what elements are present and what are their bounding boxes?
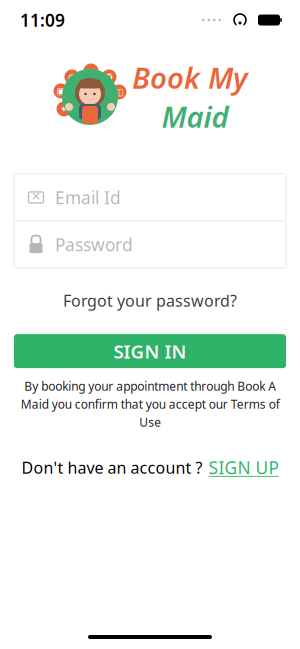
staticText: By booking your appointment through Book… — [20, 378, 279, 430]
staticText: ♻ — [105, 72, 113, 82]
staticText: Password — [55, 233, 133, 256]
button[interactable]: SIGN UP — [208, 456, 278, 479]
staticText: ◍ — [68, 72, 76, 82]
staticText: ✕ — [31, 190, 41, 203]
button[interactable]: SIGN IN — [14, 334, 286, 368]
button[interactable]: Forgot your password? — [53, 284, 247, 317]
staticText: Don't have an account ? — [21, 457, 202, 478]
staticText: 11:09 — [20, 8, 65, 31]
staticText: ◫ — [114, 87, 123, 97]
staticText: ✂ — [87, 66, 95, 76]
staticText: ▣ — [56, 86, 65, 96]
staticText: ✦ — [60, 104, 68, 114]
staticText: SIGN IN — [113, 339, 186, 364]
staticText: Book My — [132, 58, 248, 97]
staticText: Maid — [161, 97, 228, 136]
staticText: Forgot your password? — [63, 290, 237, 311]
staticText: SIGN UP — [208, 456, 278, 479]
staticText: Email Id — [55, 186, 121, 209]
